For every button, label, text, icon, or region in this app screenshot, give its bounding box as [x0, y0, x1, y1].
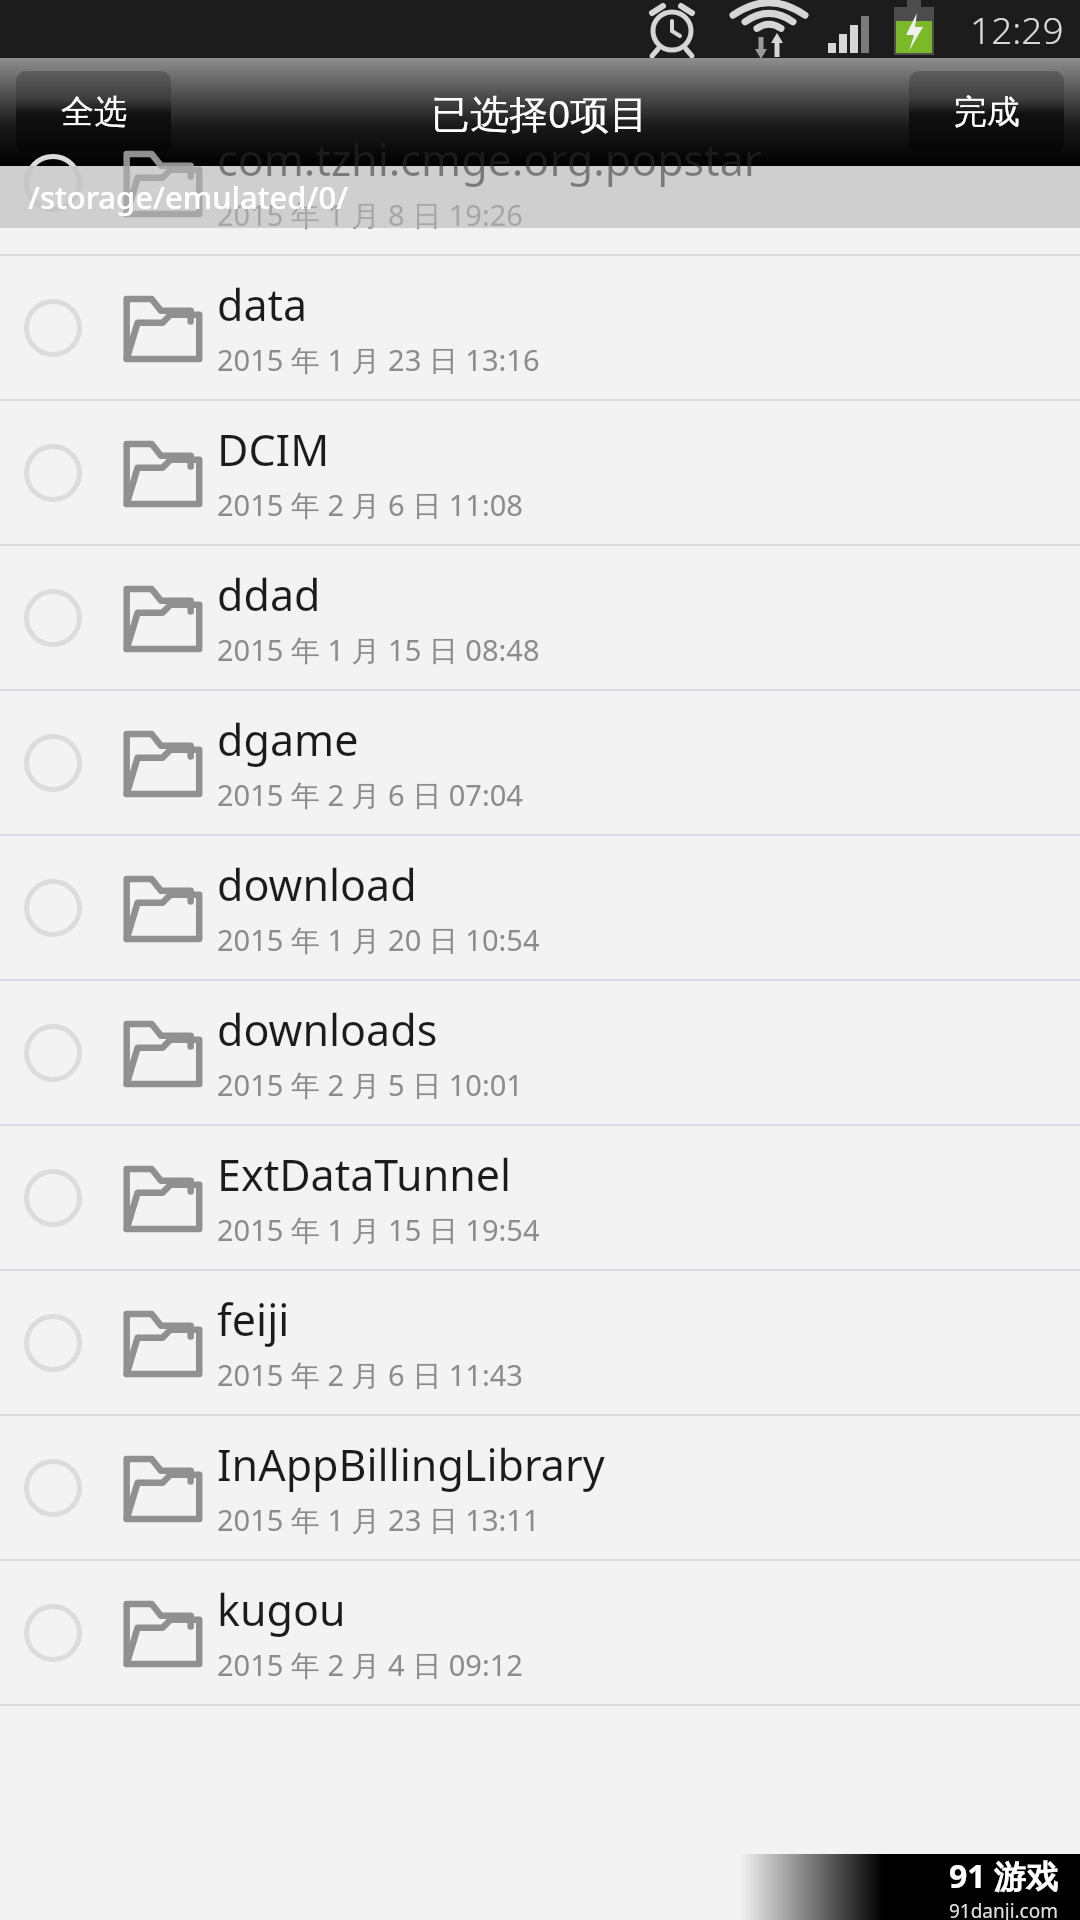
- staticText: 2015 年 1 月 15 日 19:54: [217, 1210, 540, 1250]
- staticText: ExtDataTunnel: [217, 1145, 512, 1204]
- staticText: InAppBillingLibrary: [217, 1435, 605, 1494]
- button[interactable]: Select feiji: [0, 1271, 1080, 1416]
- staticText: DCIM: [217, 420, 330, 479]
- button[interactable]: Select ddad: [0, 546, 105, 689]
- staticText: data: [217, 275, 308, 334]
- button[interactable]: Select kugou: [0, 1561, 1080, 1706]
- staticText: 2015 年 2 月 6 日 11:43: [217, 1355, 523, 1395]
- button[interactable]: 完成: [909, 71, 1064, 153]
- staticText: feiji: [217, 1290, 290, 1349]
- button[interactable]: 全选: [16, 71, 171, 153]
- staticText: 已选择0项目: [431, 86, 649, 139]
- staticText: 2015 年 2 月 6 日 07:04: [217, 775, 523, 815]
- button[interactable]: Select DCIM: [0, 401, 105, 544]
- staticText: ddad: [217, 565, 321, 624]
- staticText: 2015 年 2 月 6 日 11:08: [217, 485, 523, 525]
- staticText: dgame: [217, 710, 359, 769]
- button[interactable]: Select dgame: [0, 691, 105, 834]
- staticText: 91danji.com: [948, 1898, 1058, 1920]
- staticText: 2015 年 1 月 20 日 10:54: [217, 920, 540, 960]
- staticText: 2015 年 2 月 5 日 10:01: [217, 1065, 523, 1105]
- staticText: kugou: [217, 1580, 346, 1639]
- button[interactable]: Select ddad: [0, 546, 1080, 691]
- staticText: downloads: [217, 1000, 438, 1059]
- staticText: 2015 年 1 月 15 日 08:48: [217, 630, 540, 670]
- staticText: 91 游戏: [949, 1854, 1058, 1898]
- button[interactable]: Select com.tzhi.cmge.org.popstar: [0, 111, 1080, 256]
- button[interactable]: Select ExtDataTunnel: [0, 1126, 1080, 1271]
- staticText: 全选: [61, 91, 127, 133]
- button[interactable]: Select downloads: [0, 981, 1080, 1126]
- staticText: 完成: [954, 91, 1020, 133]
- button[interactable]: Select feiji: [0, 1271, 105, 1414]
- staticText: download: [217, 855, 417, 914]
- button[interactable]: Select download: [0, 836, 105, 979]
- button[interactable]: Select dgame: [0, 691, 1080, 836]
- button[interactable]: Select InAppBillingLibrary: [0, 1416, 105, 1559]
- button[interactable]: Select InAppBillingLibrary: [0, 1416, 1080, 1561]
- button[interactable]: Select data: [0, 256, 1080, 401]
- staticText: 12:29: [970, 4, 1064, 54]
- button[interactable]: Select kugou: [0, 1561, 105, 1704]
- button[interactable]: Select ExtDataTunnel: [0, 1126, 105, 1269]
- button[interactable]: Select DCIM: [0, 401, 1080, 546]
- button[interactable]: Select downloads: [0, 981, 105, 1124]
- staticText: 2015 年 1 月 23 日 13:16: [217, 340, 540, 380]
- staticText: com.tzhi.cmge.org.popstar: [217, 130, 762, 189]
- staticText: 2015 年 2 月 4 日 09:12: [217, 1645, 523, 1685]
- button[interactable]: Select com.tzhi.cmge.org.popstar: [0, 111, 105, 254]
- staticText: 2015 年 1 月 23 日 13:11: [217, 1500, 540, 1540]
- button[interactable]: Select download: [0, 836, 1080, 981]
- staticText: 2015 年 1 月 8 日 19:26: [217, 195, 523, 235]
- staticText: /storage/emulated/0/: [28, 176, 349, 218]
- button[interactable]: Select data: [0, 256, 105, 399]
